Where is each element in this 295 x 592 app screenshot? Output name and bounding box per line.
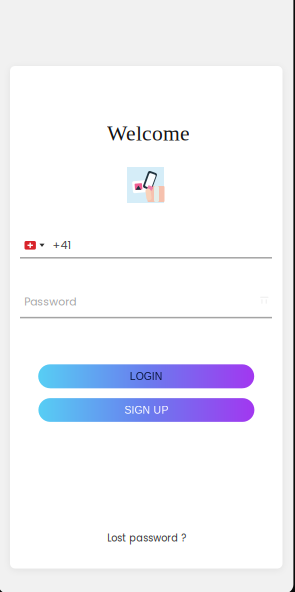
button[interactable]: SIGN UP [38,398,254,422]
staticText: Password [24,294,76,309]
staticText: SIGN UP [124,404,168,416]
button[interactable]: Select country code [24,241,44,250]
staticText: Lost password ? [107,531,186,545]
staticText: +41 [52,237,71,253]
button[interactable]: Show password [259,295,270,306]
button[interactable]: LOGIN [38,364,254,388]
staticText: Welcome [107,121,190,145]
staticText: LOGIN [130,370,163,382]
button[interactable]: Lost password ? [107,531,186,545]
